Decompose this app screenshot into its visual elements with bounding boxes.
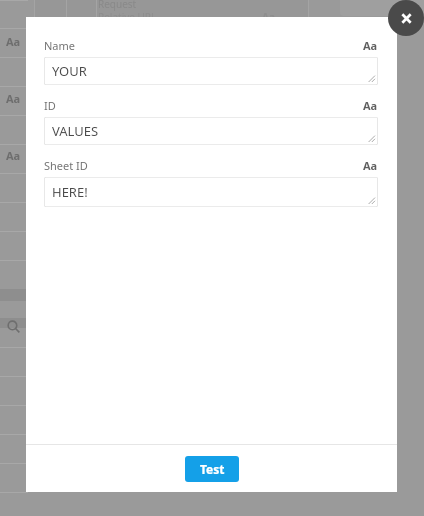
staticText: Test	[200, 461, 225, 477]
staticText: ID	[44, 98, 56, 113]
button[interactable]: Aa	[363, 158, 378, 173]
button[interactable]: HERE!	[44, 177, 378, 207]
staticText: Sheet ID	[44, 158, 88, 173]
button[interactable]: Aa	[363, 98, 378, 113]
staticText: Aa	[6, 148, 21, 163]
staticText: Request	[98, 0, 137, 11]
button[interactable]: YOUR	[44, 57, 378, 85]
staticText: Relative URL	[98, 10, 157, 24]
staticText: Aa	[6, 91, 21, 106]
staticText: YOUR	[52, 62, 87, 80]
staticText: Aa	[262, 10, 275, 24]
staticText: Name	[44, 38, 76, 53]
button[interactable]: Aa	[363, 38, 378, 53]
button[interactable]: Close	[388, 0, 424, 36]
staticText: HERE!	[52, 183, 88, 201]
staticText: Aa	[6, 34, 21, 49]
staticText: VALUES	[52, 122, 99, 140]
button[interactable]: Test	[185, 456, 239, 482]
button[interactable]: VALUES	[44, 117, 378, 145]
